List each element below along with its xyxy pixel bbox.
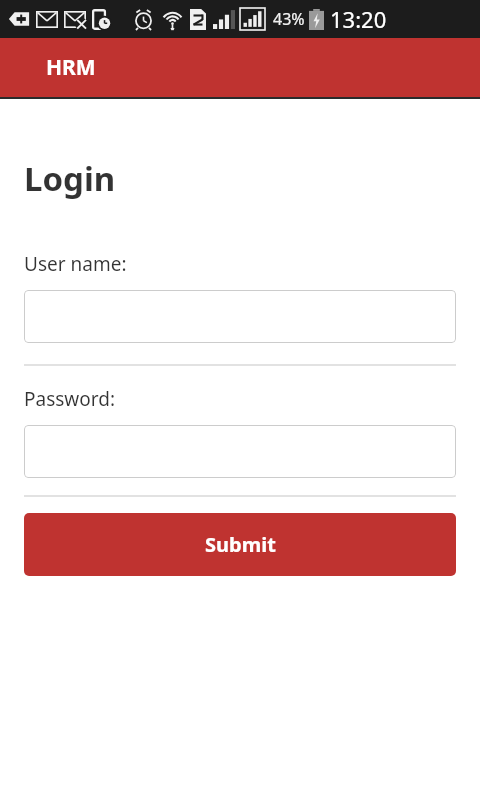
staticText: 13:20 (330, 4, 387, 34)
button[interactable]: Text input (24, 290, 456, 343)
staticText: User name: (24, 251, 127, 277)
staticText: 43% (273, 8, 305, 30)
staticText: HRM (46, 53, 96, 82)
staticText: Password: (24, 386, 116, 412)
button[interactable]: Text input (24, 425, 456, 478)
button[interactable]: Submit (24, 513, 456, 576)
staticText: Login (24, 156, 116, 201)
staticText: Submit (205, 531, 276, 558)
